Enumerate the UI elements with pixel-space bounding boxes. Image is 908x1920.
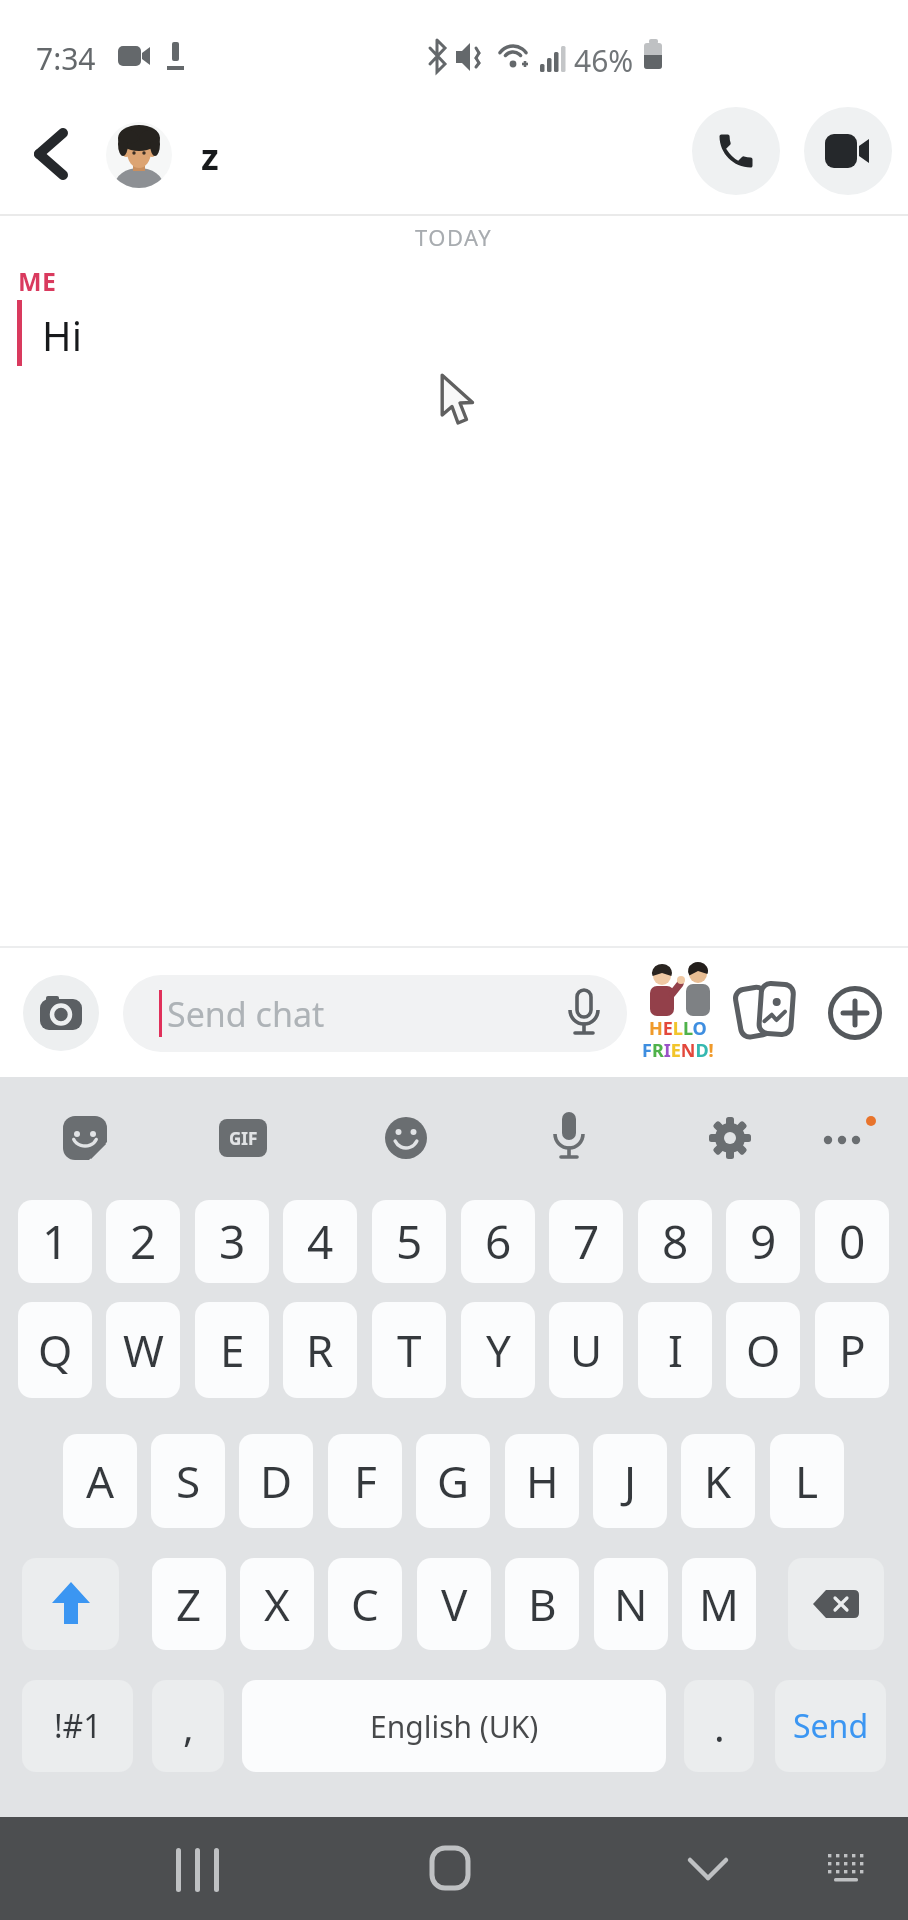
button[interactable] [551,1112,587,1164]
button[interactable]: 9 [726,1200,800,1283]
button[interactable] [430,1846,470,1890]
staticText: U [570,1320,603,1380]
button[interactable]: Send [775,1680,886,1772]
button[interactable] [106,122,172,188]
button[interactable] [692,107,780,195]
staticText: W [123,1320,164,1380]
button[interactable]: GIF [219,1119,267,1157]
button[interactable]: D [239,1434,313,1528]
staticText: ME [18,264,57,296]
button[interactable]: N [594,1558,668,1650]
button[interactable] [804,107,892,195]
button[interactable] [640,960,716,1022]
button[interactable]: B [505,1558,579,1650]
staticText: M [699,1574,739,1634]
button[interactable]: A [63,1434,137,1528]
staticText: 3 [219,1210,246,1273]
staticText: J [624,1451,637,1511]
button[interactable]: 0 [815,1200,889,1283]
staticText: C [351,1574,379,1634]
button[interactable]: H [505,1434,579,1528]
button[interactable]: 2 [106,1200,180,1283]
button[interactable]: 5 [372,1200,446,1283]
button[interactable]: 1 [18,1200,92,1283]
button[interactable]: F [328,1434,402,1528]
button[interactable]: C [328,1558,402,1650]
button[interactable]: !#1 [22,1680,133,1772]
staticText: 5 [396,1210,423,1273]
staticText: GIF [229,1127,258,1150]
button[interactable]: 4 [283,1200,357,1283]
staticText: !#1 [54,1704,102,1748]
button[interactable] [63,1116,107,1160]
button[interactable]: J [593,1434,667,1528]
staticText: 8 [662,1210,689,1273]
button[interactable]: Y [461,1302,535,1398]
button[interactable]: 6 [461,1200,535,1283]
button[interactable]: V [417,1558,491,1650]
button[interactable]: Q [18,1302,92,1398]
staticText: N [614,1574,648,1634]
button[interactable]: 7 [549,1200,623,1283]
button[interactable]: S [151,1434,225,1528]
button[interactable]: 8 [638,1200,712,1283]
button[interactable] [384,1116,428,1160]
button[interactable]: , [152,1680,224,1772]
button[interactable]: K [681,1434,755,1528]
staticText: 1 [42,1210,69,1273]
staticText: E [220,1320,245,1380]
staticText: X [264,1574,290,1634]
staticText: TODAY [415,222,493,252]
staticText: T [397,1320,422,1380]
staticText: H [526,1451,559,1511]
staticText: Hi [42,308,82,354]
button[interactable]: . [684,1680,754,1772]
button[interactable] [22,1558,119,1650]
button[interactable]: L [770,1434,844,1528]
staticText: 46% [574,40,634,74]
button[interactable]: Send chat [123,975,627,1052]
staticText: V [441,1574,468,1634]
staticText: B [528,1574,557,1634]
staticText: 2 [130,1210,157,1273]
button[interactable]: English (UK) [242,1680,666,1772]
button[interactable]: R [283,1302,357,1398]
button[interactable]: U [549,1302,623,1398]
button[interactable]: T [372,1302,446,1398]
staticText: Send [793,1704,869,1748]
button[interactable]: M [682,1558,756,1650]
button[interactable] [708,1116,752,1160]
button[interactable]: I [638,1302,712,1398]
button[interactable]: 3 [195,1200,269,1283]
staticText: F [354,1451,377,1511]
staticText: L [795,1451,819,1511]
button[interactable] [176,1846,220,1894]
button[interactable]: G [416,1434,490,1528]
button[interactable] [736,978,796,1046]
button[interactable] [23,975,99,1051]
button[interactable]: Z [152,1558,226,1650]
button[interactable] [688,1858,728,1882]
staticText: R [306,1320,334,1380]
button[interactable] [820,1110,882,1158]
button[interactable] [828,986,882,1040]
staticText: HELLO [649,1016,707,1040]
staticText: English (UK) [370,1706,539,1747]
button[interactable]: W [106,1302,180,1398]
staticText: z [201,132,219,178]
button[interactable] [826,1852,866,1886]
staticText: A [86,1451,115,1511]
staticText: O [746,1320,781,1380]
staticText: 6 [485,1210,512,1273]
staticText: I [668,1320,683,1380]
staticText: K [704,1451,732,1511]
button[interactable]: E [195,1302,269,1398]
button[interactable]: O [726,1302,800,1398]
button[interactable]: X [240,1558,314,1650]
button[interactable]: P [815,1302,889,1398]
staticText: D [260,1451,293,1511]
button[interactable] [788,1558,884,1650]
staticText: 9 [750,1210,777,1273]
staticText: Y [486,1320,511,1380]
button[interactable] [30,126,72,182]
